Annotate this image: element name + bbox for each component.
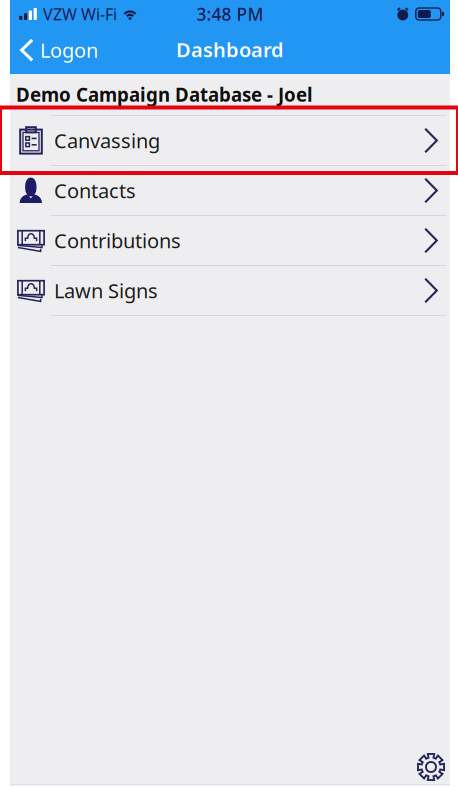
button[interactable]: Canvassing: [10, 116, 450, 165]
staticText: Dashboard: [176, 36, 284, 63]
staticText: Canvassing: [54, 127, 160, 154]
button[interactable]: Contributions: [10, 216, 450, 265]
staticText: Demo Campaign Database - Joel: [16, 82, 313, 107]
button[interactable]: Logon: [10, 28, 108, 74]
staticText: VZW Wi-Fi: [43, 3, 117, 25]
staticText: Contributions: [54, 227, 181, 254]
staticText: 3:48 PM: [196, 2, 263, 25]
button[interactable]: Lawn Signs: [10, 266, 450, 315]
staticText: Logon: [40, 37, 98, 63]
button[interactable]: Settings: [416, 752, 450, 784]
button[interactable]: Contacts: [10, 166, 450, 215]
staticText: Lawn Signs: [54, 277, 158, 304]
staticText: Contacts: [54, 177, 136, 204]
